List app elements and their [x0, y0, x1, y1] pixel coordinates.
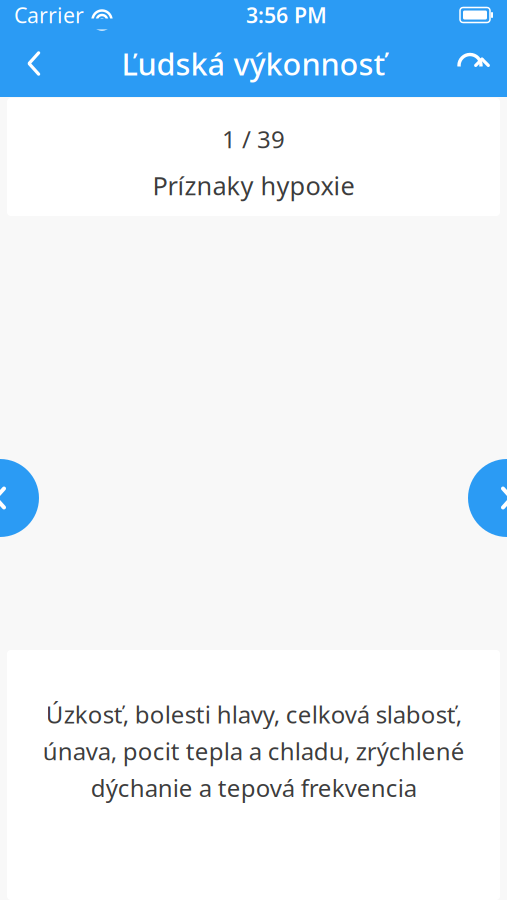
staticText: 1 / 39: [222, 123, 285, 155]
staticText: Carrier: [14, 1, 84, 29]
button[interactable]: Redo: [445, 35, 501, 91]
button[interactable]: Back: [6, 35, 62, 91]
staticText: 3:56 PM: [246, 1, 327, 29]
button[interactable]: Next: [468, 459, 507, 537]
button[interactable]: Previous: [0, 459, 39, 537]
staticText: Príznaky hypoxie: [152, 169, 354, 202]
staticText: Úzkosť, bolesti hlavy, celková slabosť, …: [42, 698, 464, 804]
staticText: Ľudská výkonnosť: [121, 43, 385, 84]
